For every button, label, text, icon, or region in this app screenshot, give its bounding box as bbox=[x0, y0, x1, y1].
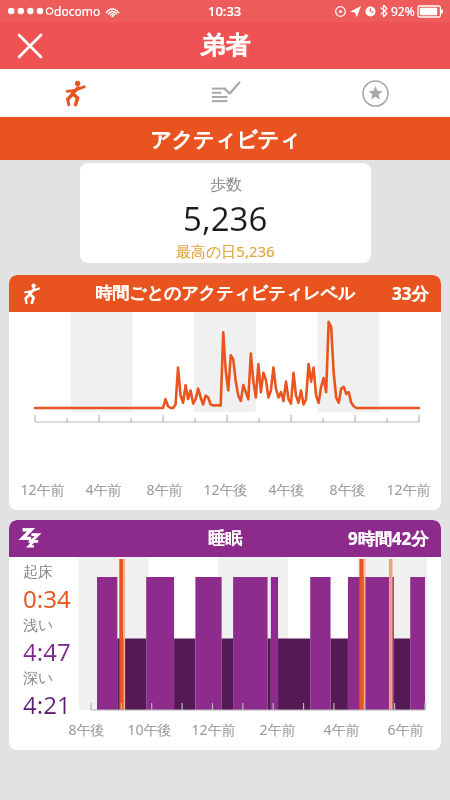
staticText: 8午後 bbox=[68, 720, 105, 739]
staticText: 12午前 bbox=[191, 720, 236, 739]
staticText: 睡眠 bbox=[208, 528, 242, 549]
button[interactable]: Log bbox=[150, 69, 300, 117]
button[interactable]: Favorites bbox=[300, 69, 450, 117]
button[interactable]: 時間ごとのアクティビティレベル bbox=[9, 275, 441, 510]
staticText: 9時間42分 bbox=[348, 527, 429, 550]
staticText: 5,236 bbox=[183, 196, 268, 241]
staticText: 深い bbox=[23, 669, 54, 688]
staticText: 歩数 bbox=[210, 175, 242, 195]
staticText: 92% bbox=[391, 3, 415, 19]
staticText: 4:47 bbox=[23, 635, 71, 668]
staticText: 33分 bbox=[392, 282, 429, 305]
staticText: 4午後 bbox=[268, 480, 305, 499]
staticText: 10:33 bbox=[208, 2, 242, 20]
staticText: 6午前 bbox=[387, 720, 424, 739]
staticText: 最高の日5,236 bbox=[176, 241, 275, 261]
staticText: 4午前 bbox=[85, 480, 122, 499]
staticText: 12午前 bbox=[20, 480, 65, 499]
button[interactable]: Close bbox=[10, 26, 50, 66]
staticText: 2午前 bbox=[259, 720, 296, 739]
staticText: 8午後 bbox=[329, 480, 366, 499]
staticText: 弟者 bbox=[200, 30, 250, 61]
button[interactable]: 歩数 bbox=[80, 163, 371, 263]
staticText: 4:21 bbox=[23, 688, 71, 720]
button[interactable]: アクティビティ bbox=[0, 120, 450, 160]
staticText: 12午後 bbox=[203, 480, 248, 499]
staticText: 4午前 bbox=[323, 720, 360, 739]
staticText: アクティビティ bbox=[150, 127, 301, 153]
staticText: 8午前 bbox=[146, 480, 183, 499]
staticText: 浅い bbox=[23, 616, 54, 635]
staticText: 10午後 bbox=[127, 720, 172, 739]
staticText: 起床 bbox=[23, 563, 53, 582]
staticText: 0:34 bbox=[23, 582, 71, 615]
staticText: docomo bbox=[54, 3, 101, 19]
button[interactable]: Activity bbox=[0, 69, 150, 117]
staticText: 12午前 bbox=[386, 480, 431, 499]
staticText: 時間ごとのアクティビティレベル bbox=[95, 283, 356, 304]
button[interactable]: 睡眠 bbox=[9, 520, 441, 750]
